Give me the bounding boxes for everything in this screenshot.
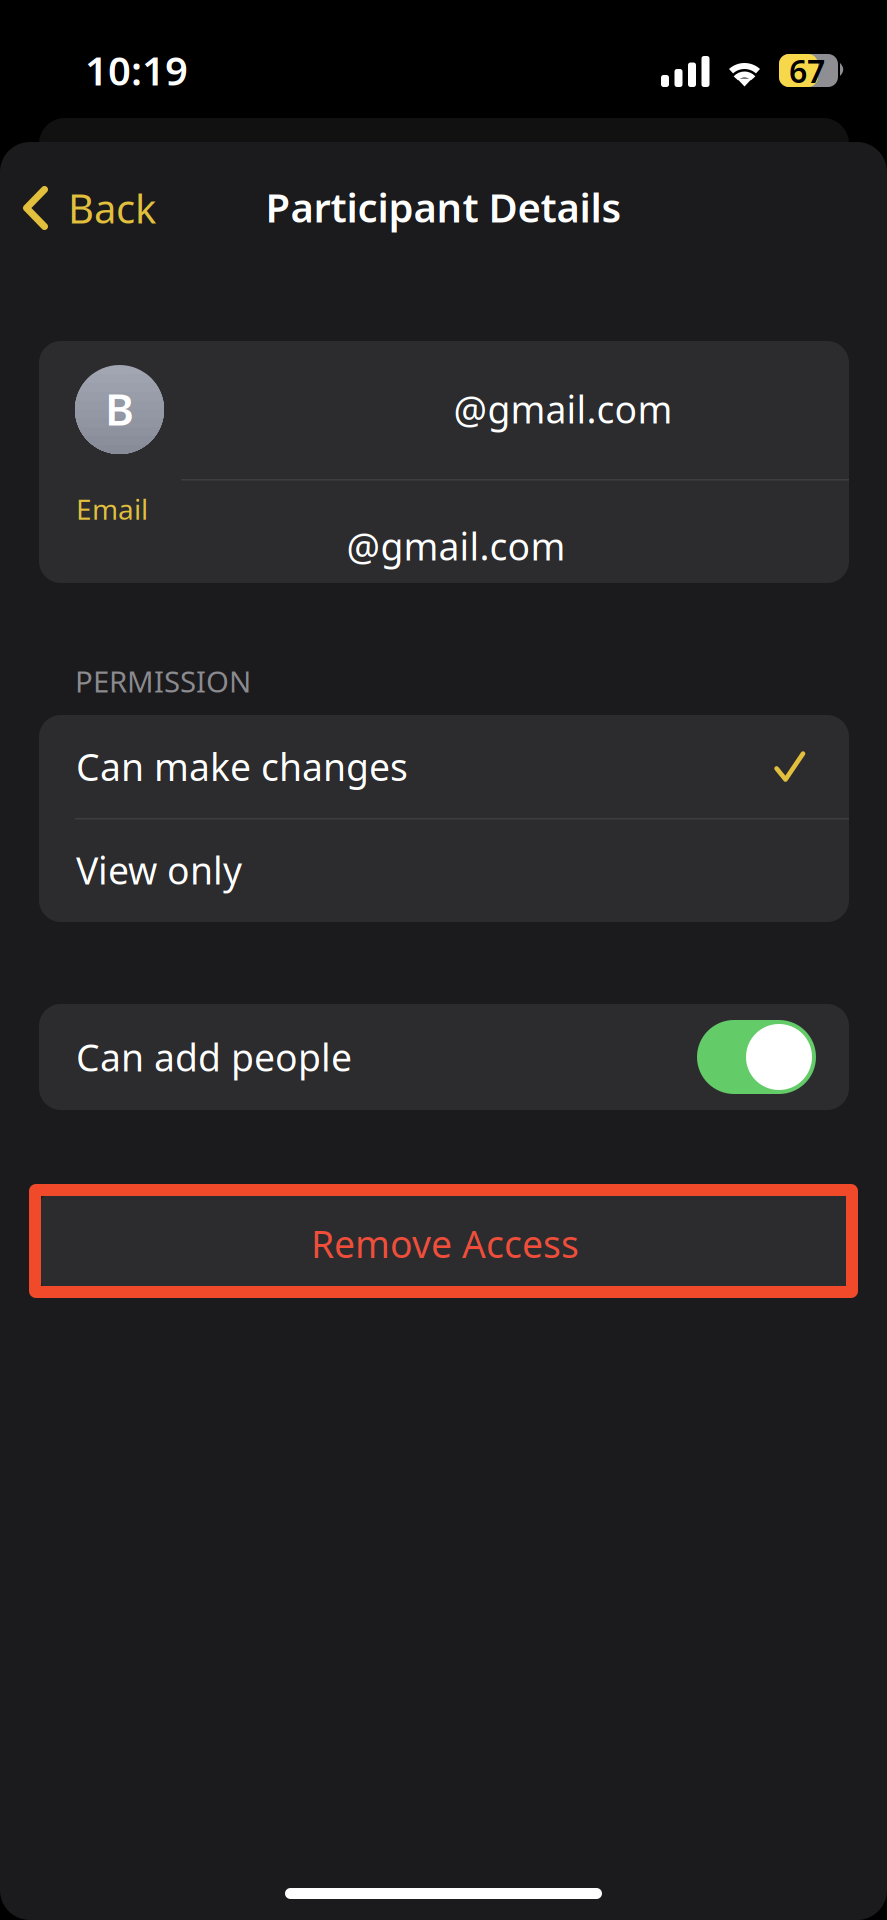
button[interactable]: Back xyxy=(10,178,185,238)
staticText: 10:19 xyxy=(85,43,188,96)
staticText: Email xyxy=(76,490,148,528)
staticText: @gmail.com xyxy=(453,384,672,434)
staticText: B xyxy=(105,379,134,438)
button[interactable]: Remove Access xyxy=(41,1196,849,1287)
staticText: 67 xyxy=(789,49,825,92)
staticText: View only xyxy=(76,845,242,895)
button[interactable]: Can add people xyxy=(39,1004,849,1110)
staticText: @gmail.com xyxy=(346,521,565,571)
staticText: Back xyxy=(68,181,156,234)
staticText: PERMISSION xyxy=(75,661,251,700)
staticText: Can make changes xyxy=(76,742,408,791)
staticText: Participant Details xyxy=(265,180,621,233)
staticText: Can add people xyxy=(76,1032,352,1082)
staticText: Remove Access xyxy=(311,1219,579,1268)
button[interactable]: Can make changes xyxy=(39,715,849,818)
button[interactable]: View only xyxy=(39,818,849,922)
